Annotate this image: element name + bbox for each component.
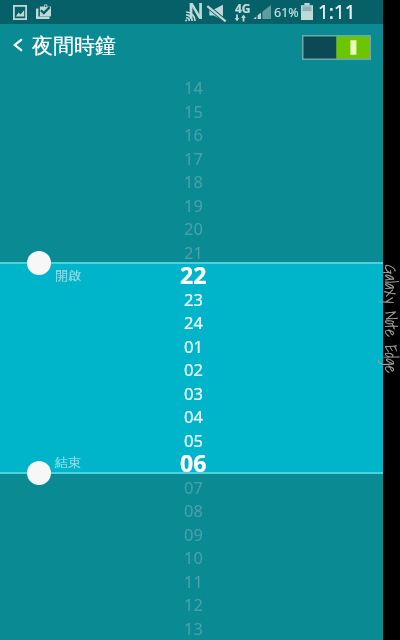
button[interactable]: Back bbox=[0, 24, 34, 66]
button[interactable]: 11 bbox=[184, 570, 203, 592]
button[interactable]: 16 bbox=[184, 123, 203, 145]
button[interactable]: Night clock on bbox=[302, 35, 371, 60]
button[interactable]: 18 bbox=[184, 170, 203, 192]
staticText: 1:11 bbox=[318, 0, 356, 23]
button[interactable]: 15 bbox=[184, 100, 203, 122]
button[interactable]: 10 bbox=[184, 546, 203, 568]
button[interactable]: 14 bbox=[184, 76, 203, 98]
button[interactable]: 01 bbox=[184, 335, 203, 357]
button[interactable]: 23 bbox=[184, 288, 203, 310]
button[interactable]: 02 bbox=[184, 358, 203, 380]
button[interactable]: 21 bbox=[184, 241, 203, 263]
button[interactable]: 09 bbox=[184, 523, 203, 545]
button[interactable]: 07 bbox=[184, 476, 203, 498]
button[interactable]: 04 bbox=[184, 405, 203, 427]
staticText: 4G bbox=[235, 0, 251, 16]
button[interactable]: 03 bbox=[184, 382, 203, 404]
button[interactable]: 24 bbox=[184, 311, 203, 333]
button[interactable]: 17 bbox=[184, 147, 203, 169]
button[interactable]: End time handle bbox=[27, 461, 51, 485]
button[interactable]: 05 bbox=[184, 429, 203, 451]
button[interactable]: 19 bbox=[184, 194, 203, 216]
staticText: 61% bbox=[274, 4, 299, 21]
staticText: 開啟 bbox=[55, 267, 81, 283]
button[interactable]: 08 bbox=[184, 499, 203, 521]
button[interactable]: 22 bbox=[180, 259, 207, 290]
button[interactable]: 20 bbox=[184, 217, 203, 239]
button[interactable]: Start time handle bbox=[27, 251, 51, 275]
button[interactable]: 12 bbox=[184, 593, 203, 615]
button[interactable]: 06 bbox=[180, 447, 207, 478]
staticText: 結束 bbox=[55, 454, 81, 470]
button[interactable]: 13 bbox=[184, 617, 203, 639]
staticText: 夜間時鐘 bbox=[32, 33, 116, 59]
